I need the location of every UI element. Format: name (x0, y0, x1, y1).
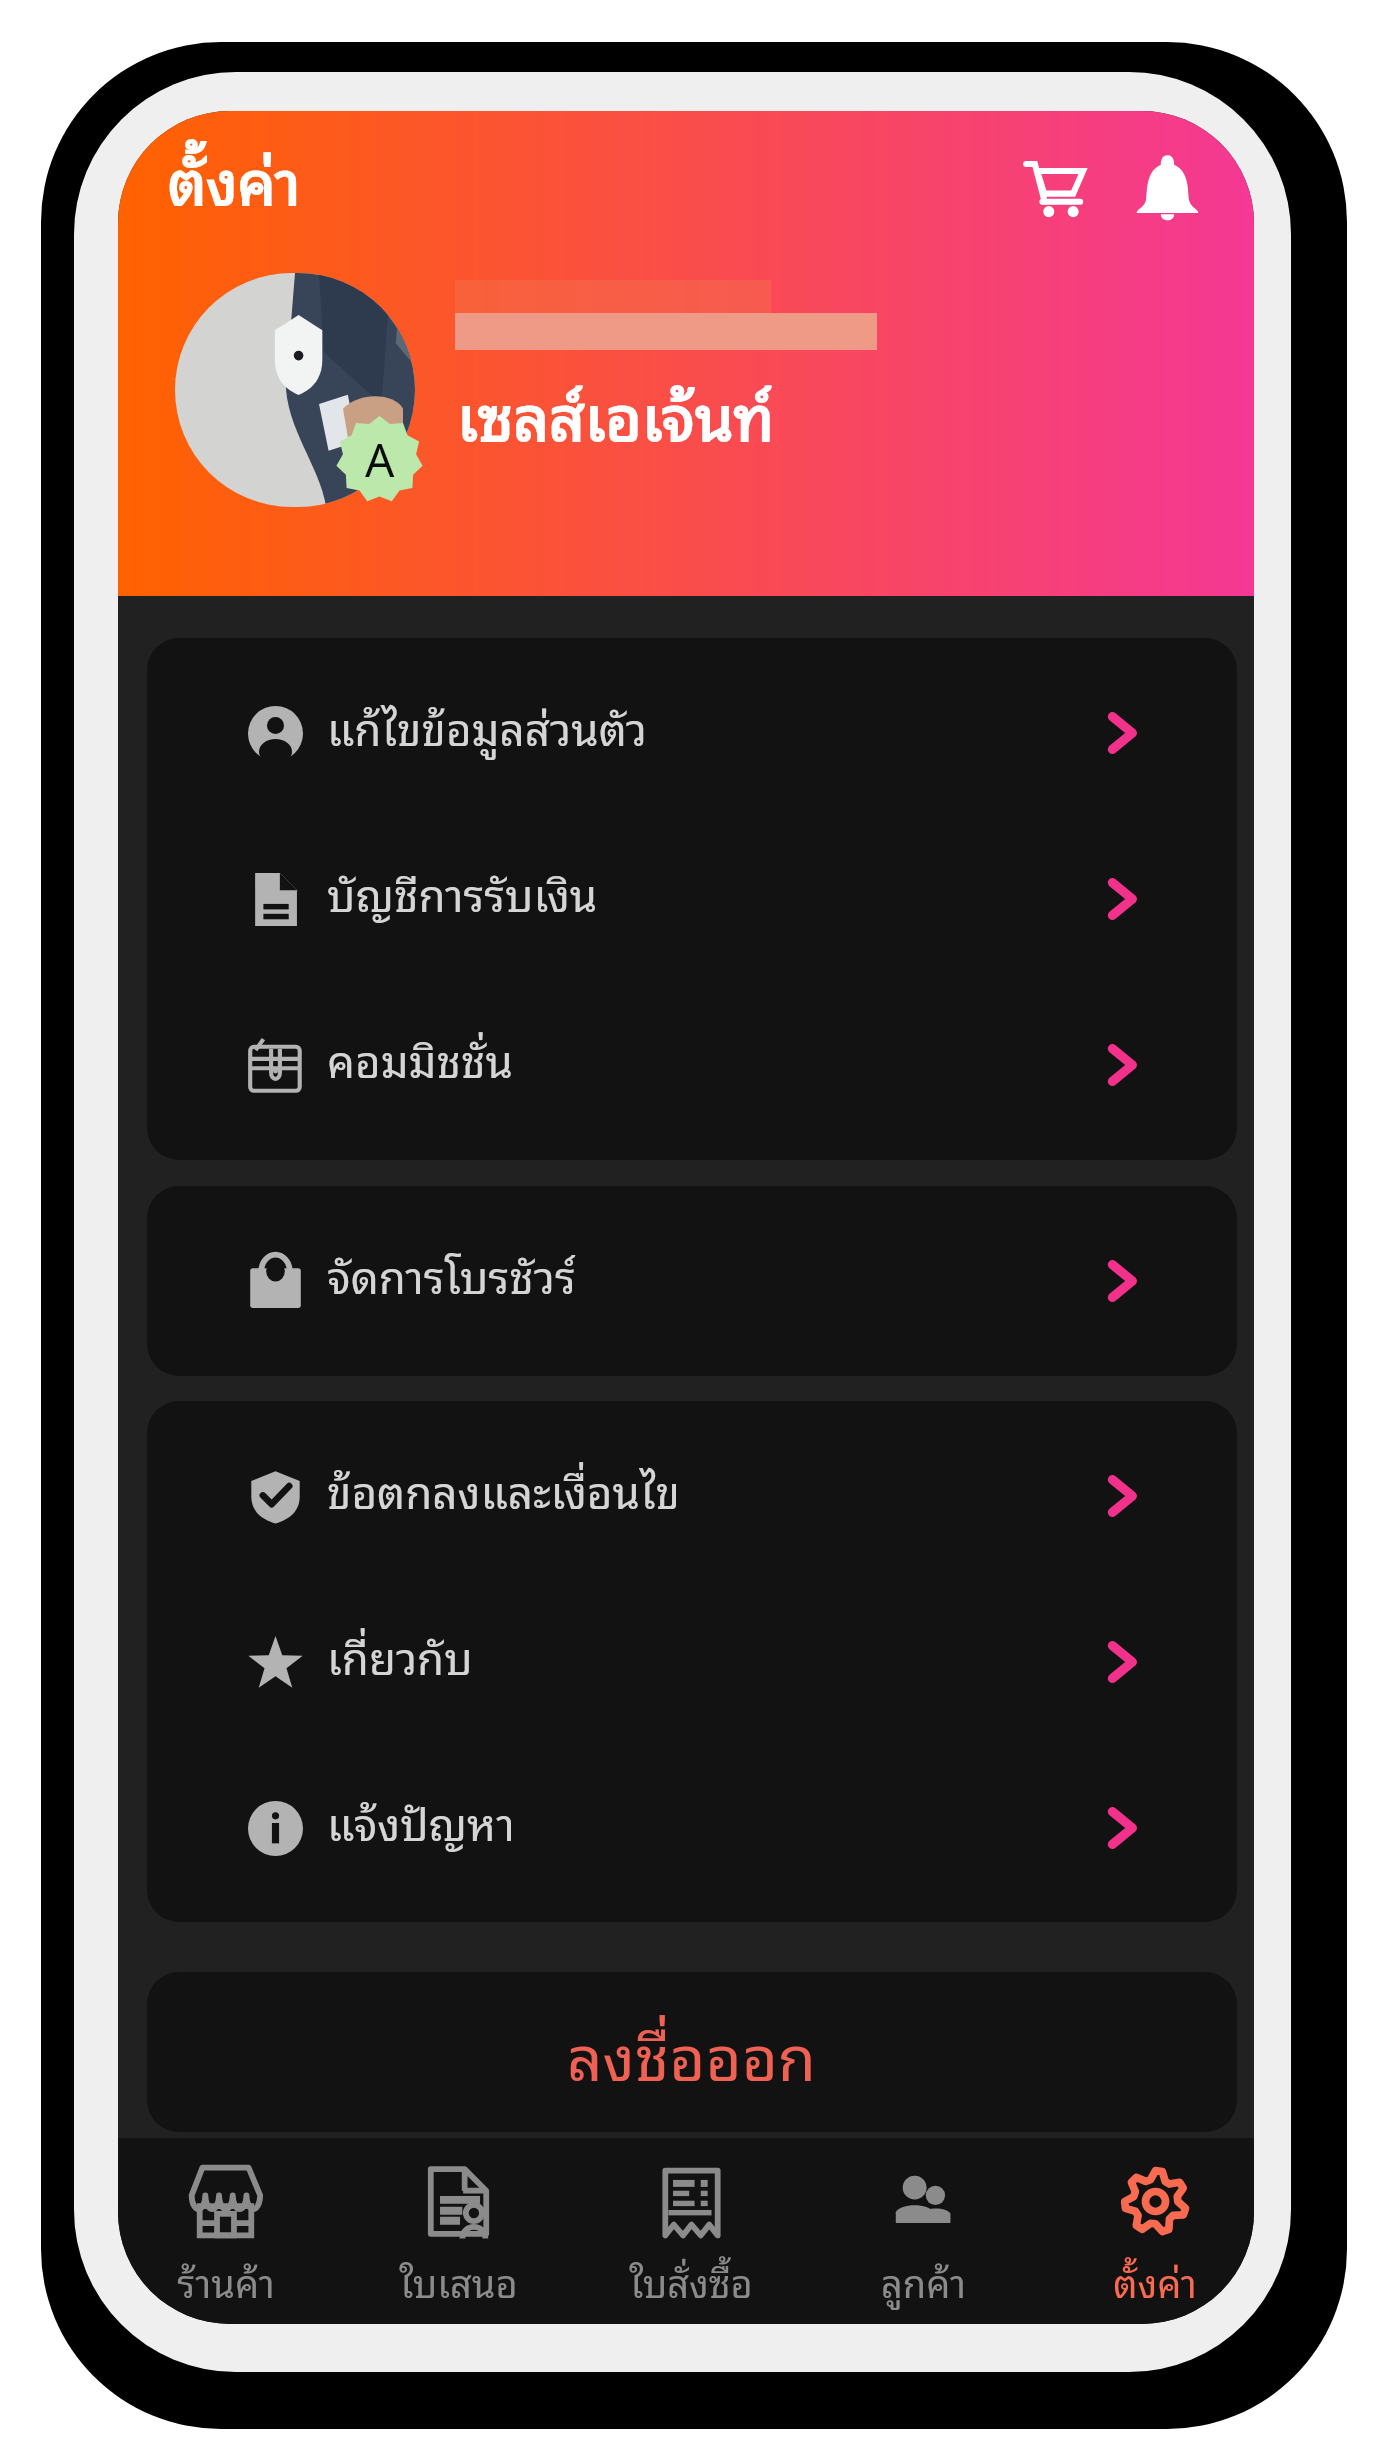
button[interactable]: ลูกค้า (807, 2138, 1039, 2324)
button[interactable]: บัญชีการรับเงิน (147, 816, 1237, 982)
staticText: คอมมิชชั่น (327, 1023, 513, 1093)
staticText: แก้ไขข้อมูลส่วนตัว (327, 691, 647, 761)
button[interactable]: Cart (1009, 144, 1099, 234)
staticText: เกี่ยวกับ (327, 1620, 473, 1690)
staticText: ลูกค้า (881, 2250, 966, 2311)
button[interactable]: Profile photo (175, 273, 415, 507)
staticText: เซลส์เอเจ้นท์ (457, 363, 775, 462)
button[interactable]: ร้านค้า (118, 2138, 342, 2324)
staticText: A (365, 428, 395, 491)
button[interactable]: แจ้งปัญหา (147, 1745, 1237, 1911)
staticText: ตั้งค่า (168, 130, 301, 226)
button[interactable]: ลงชื่อออก (147, 1972, 1237, 2132)
button[interactable]: แก้ไขข้อมูลส่วนตัว (147, 650, 1237, 816)
button[interactable]: จัดการโบรชัวร์ (147, 1198, 1237, 1364)
staticText: ข้อตกลงและเงื่อนไข (327, 1454, 680, 1524)
button[interactable]: Notifications (1122, 142, 1212, 232)
staticText: ตั้งค่า (1113, 2250, 1197, 2311)
button[interactable]: เกี่ยวกับ (147, 1579, 1237, 1745)
button[interactable]: ใบเสนอ (342, 2138, 575, 2324)
staticText: ร้านค้า (177, 2250, 275, 2311)
staticText: ใบสั่งซื้อ (629, 2250, 753, 2311)
button[interactable]: ข้อตกลงและเงื่อนไข (147, 1413, 1237, 1579)
staticText: แจ้งปัญหา (327, 1786, 515, 1856)
button[interactable]: ตั้งค่า (1039, 2138, 1254, 2324)
button[interactable]: คอมมิชชั่น (147, 982, 1237, 1148)
button[interactable]: ใบสั่งซื้อ (575, 2138, 807, 2324)
staticText: บัญชีการรับเงิน (327, 857, 598, 927)
staticText: จัดการโบรชัวร์ (327, 1239, 576, 1309)
staticText: ลงชื่อออก (567, 2003, 817, 2102)
staticText: ใบเสนอ (399, 2250, 518, 2311)
